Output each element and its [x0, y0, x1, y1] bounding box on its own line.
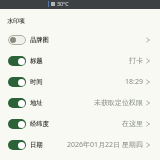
button[interactable]: 日期 [0, 134, 160, 155]
staticText: 品牌图 [30, 36, 49, 44]
staticText: 未获取定位权限 [94, 98, 143, 107]
staticText: 经纬度 [30, 120, 49, 128]
staticText: 2026年01月22日 星期四 [67, 140, 143, 150]
staticText: 18:29 [125, 77, 143, 87]
staticText: 水印项 [7, 17, 25, 24]
staticText: 地址 [30, 99, 43, 107]
button[interactable]: 地址 [0, 92, 160, 113]
button[interactable]: 品牌图 [0, 29, 160, 50]
staticText: 日期 [30, 141, 43, 149]
button[interactable]: 经纬度 [0, 113, 160, 134]
staticText: 在这里 [122, 119, 143, 128]
button[interactable]: 时间 [0, 71, 160, 92]
staticText: 打卡 [129, 56, 143, 65]
staticText: 30°C [57, 0, 69, 7]
button[interactable]: 标题 [0, 50, 160, 71]
staticText: 时间 [30, 78, 43, 86]
staticText: 标题 [30, 57, 43, 65]
